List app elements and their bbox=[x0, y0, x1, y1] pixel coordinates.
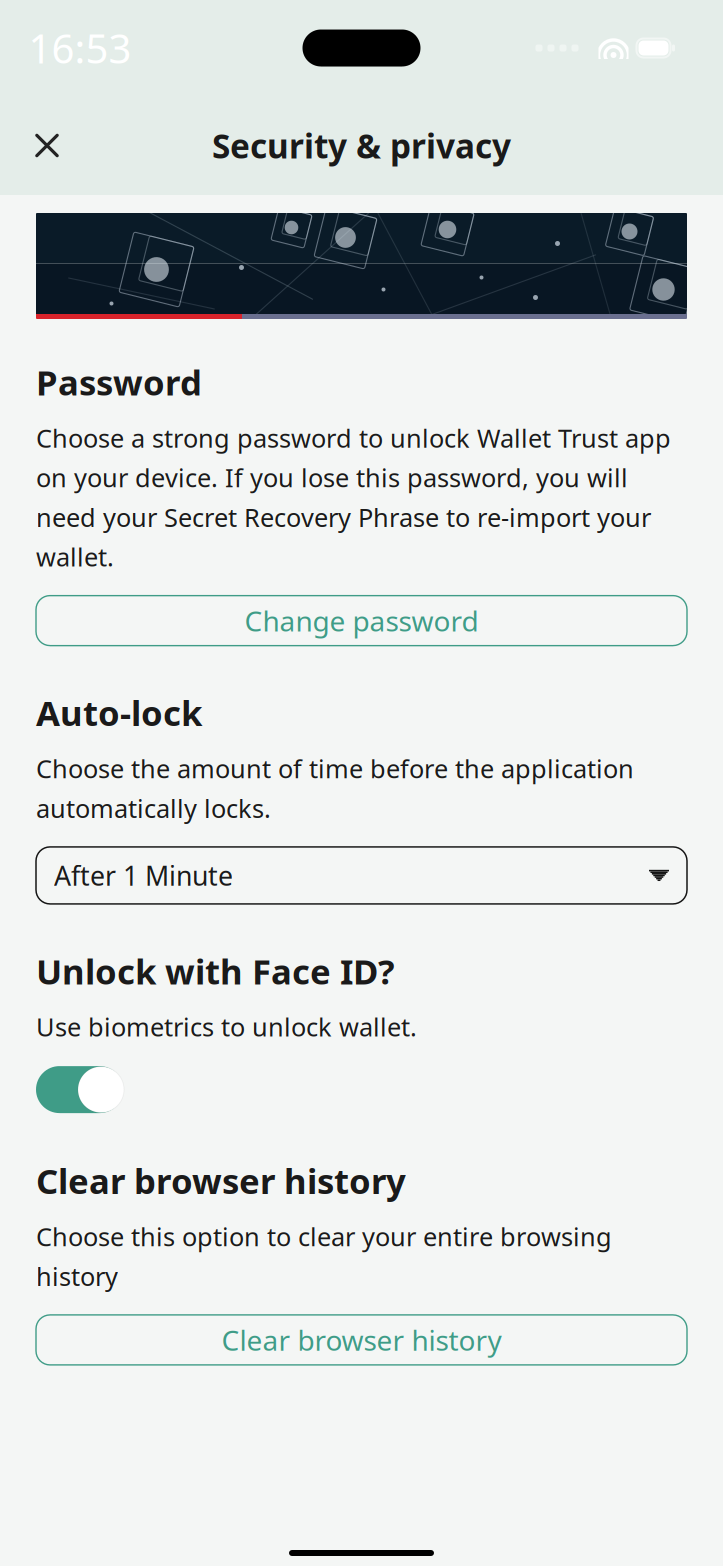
staticText: After 1 Minute bbox=[54, 858, 233, 893]
staticText: Clear browser history bbox=[221, 1321, 501, 1358]
staticText: 16:53 bbox=[28, 21, 131, 74]
button[interactable]: Close bbox=[16, 114, 78, 176]
button[interactable]: Change password bbox=[36, 596, 687, 646]
button[interactable]: Clear browser history bbox=[36, 1315, 687, 1365]
button[interactable]: Unlock with Face ID, on bbox=[36, 1066, 125, 1114]
button[interactable]: Auto-lock interval, After 1 Minute bbox=[36, 847, 687, 904]
staticText: Change password bbox=[244, 602, 478, 639]
staticText: Choose a strong password to unlock Walle… bbox=[36, 421, 671, 574]
staticText: Password bbox=[36, 359, 202, 405]
staticText: Use biometrics to unlock wallet. bbox=[36, 1010, 417, 1044]
staticText: Auto-lock bbox=[36, 690, 202, 736]
staticText: Clear browser history bbox=[36, 1158, 406, 1204]
staticText: Security & privacy bbox=[212, 123, 511, 168]
staticText: Unlock with Face ID? bbox=[36, 948, 395, 994]
staticText: Choose the amount of time before the app… bbox=[36, 752, 634, 825]
staticText: Choose this option to clear your entire … bbox=[36, 1220, 612, 1293]
